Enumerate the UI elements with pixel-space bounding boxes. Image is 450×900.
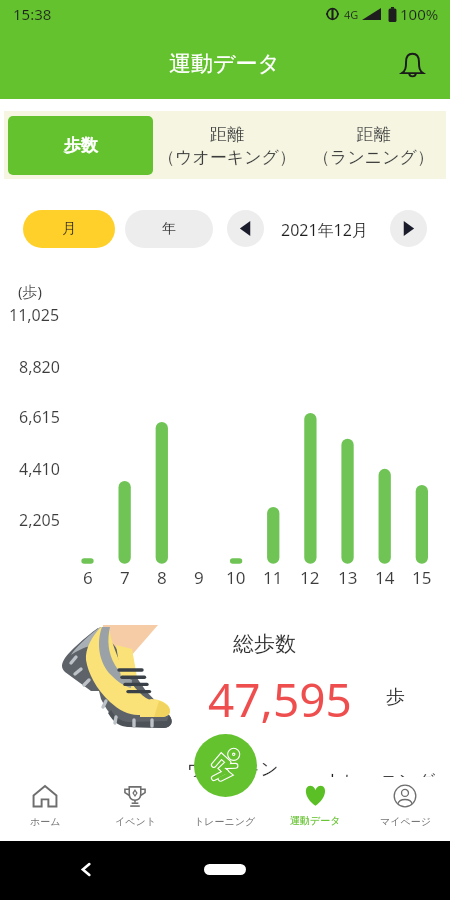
button[interactable]: Next month [390,210,427,247]
staticText: 歩 [386,685,405,709]
staticText: 47,595 [208,668,352,731]
button[interactable]: 年 [125,210,213,248]
button[interactable]: トレーニング [180,778,270,841]
staticText: 年 [162,220,176,238]
staticText: 7 [120,566,130,588]
button[interactable]: 運動データ [270,778,360,841]
staticText: 6,615 [19,406,60,426]
staticText: 6 [83,566,93,588]
staticText: 総歩数 [233,631,296,657]
staticText: 月 [62,220,76,238]
staticText: 2021年12月 [281,219,368,241]
staticText: 8 [157,566,167,588]
staticText: 2,205 [19,509,60,529]
staticText: 9 [194,566,204,588]
staticText: 4,410 [19,458,60,478]
staticText: マイページ [380,815,431,828]
staticText: 12 [300,566,320,588]
staticText: 100% [400,4,439,24]
staticText: ホーム [30,815,61,828]
button[interactable]: 歩数 [8,116,153,175]
button[interactable]: 距離 （ウオーキング） [154,116,300,175]
staticText: 歩数 [64,135,98,156]
staticText: (歩) [18,281,43,301]
staticText: 11,025 [9,304,60,324]
button[interactable]: イベント [90,778,180,841]
other: Back [80,863,93,876]
staticText: 8,820 [19,356,60,376]
staticText: 15 [412,566,432,588]
staticText: ウオーキン [187,758,279,777]
staticText: イベント [115,815,156,828]
staticText: 10 [226,566,246,588]
staticText: 距離 （ウオーキング） [158,124,296,168]
staticText: 15:38 [13,4,52,24]
staticText: トレーニング [194,815,256,828]
button[interactable]: ホーム [0,778,90,841]
button[interactable]: マイページ [360,778,450,841]
staticText: 11 [263,566,283,588]
staticText: 14 [375,566,395,588]
button[interactable]: 距離 （ランニング） [300,116,446,175]
button[interactable]: Notifications [392,44,432,84]
staticText: トレーニング [325,770,436,777]
staticText: 距離 （ランニング） [313,124,434,168]
staticText: 運動データ [169,50,281,78]
button[interactable]: Start training [194,734,257,797]
staticText: 運動データ [290,814,341,827]
staticText: 13 [338,566,358,588]
staticText: 4G [344,7,359,22]
button[interactable]: Previous month [227,210,264,247]
button[interactable]: 月 [23,210,115,248]
